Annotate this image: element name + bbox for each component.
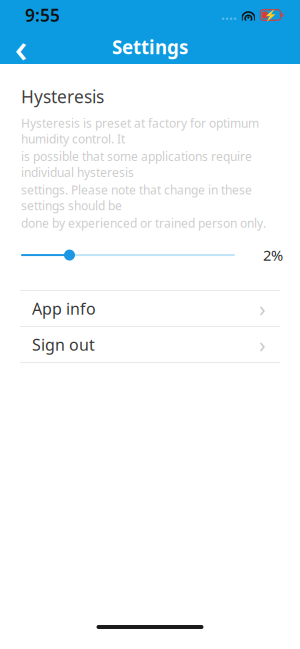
staticText: App info xyxy=(32,298,96,319)
staticText: Sign out xyxy=(32,334,95,355)
staticText: 9:55 xyxy=(25,3,60,26)
staticText: ⚡ xyxy=(264,9,277,21)
staticText: is possible that some applications requi… xyxy=(21,148,252,180)
button[interactable]: App info xyxy=(0,291,300,326)
button[interactable]: Back xyxy=(4,30,38,64)
staticText: settings. Please note that change in the… xyxy=(21,182,252,214)
staticText: done by experienced or trained person on… xyxy=(21,215,266,231)
staticText: › xyxy=(259,330,266,359)
staticText: › xyxy=(259,294,266,323)
staticText: 2% xyxy=(263,245,283,265)
staticText: Settings xyxy=(112,35,188,59)
staticText: Hysteresis is preset at factory for opti… xyxy=(21,115,259,147)
staticText: ‹ xyxy=(14,20,27,73)
button[interactable]: Sign out xyxy=(0,327,300,362)
staticText: Hysteresis xyxy=(21,85,104,108)
